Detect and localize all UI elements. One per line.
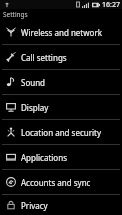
staticText: Accounts and sync — [21, 177, 91, 188]
staticText: Privacy — [21, 200, 48, 211]
button[interactable]: Applications — [0, 145, 122, 169]
staticText: Location and security — [21, 127, 102, 138]
button[interactable]: Call settings — [0, 45, 122, 69]
staticText: Display — [21, 102, 49, 113]
staticText: Settings — [3, 10, 28, 19]
button[interactable]: Wireless and network — [0, 20, 122, 44]
button[interactable]: Accounts and sync — [0, 170, 122, 194]
other: Notification — [4, 2, 10, 8]
staticText: Call settings — [21, 52, 67, 63]
staticText: Sound — [21, 77, 46, 88]
staticText: Applications — [21, 152, 67, 163]
staticText: 16:27 — [102, 0, 120, 9]
button[interactable]: Display — [0, 95, 122, 119]
button[interactable]: Sound — [0, 70, 122, 94]
button[interactable]: Privacy — [0, 195, 122, 215]
staticText: Wireless and network — [21, 27, 102, 38]
button[interactable]: Location and security — [0, 120, 122, 144]
